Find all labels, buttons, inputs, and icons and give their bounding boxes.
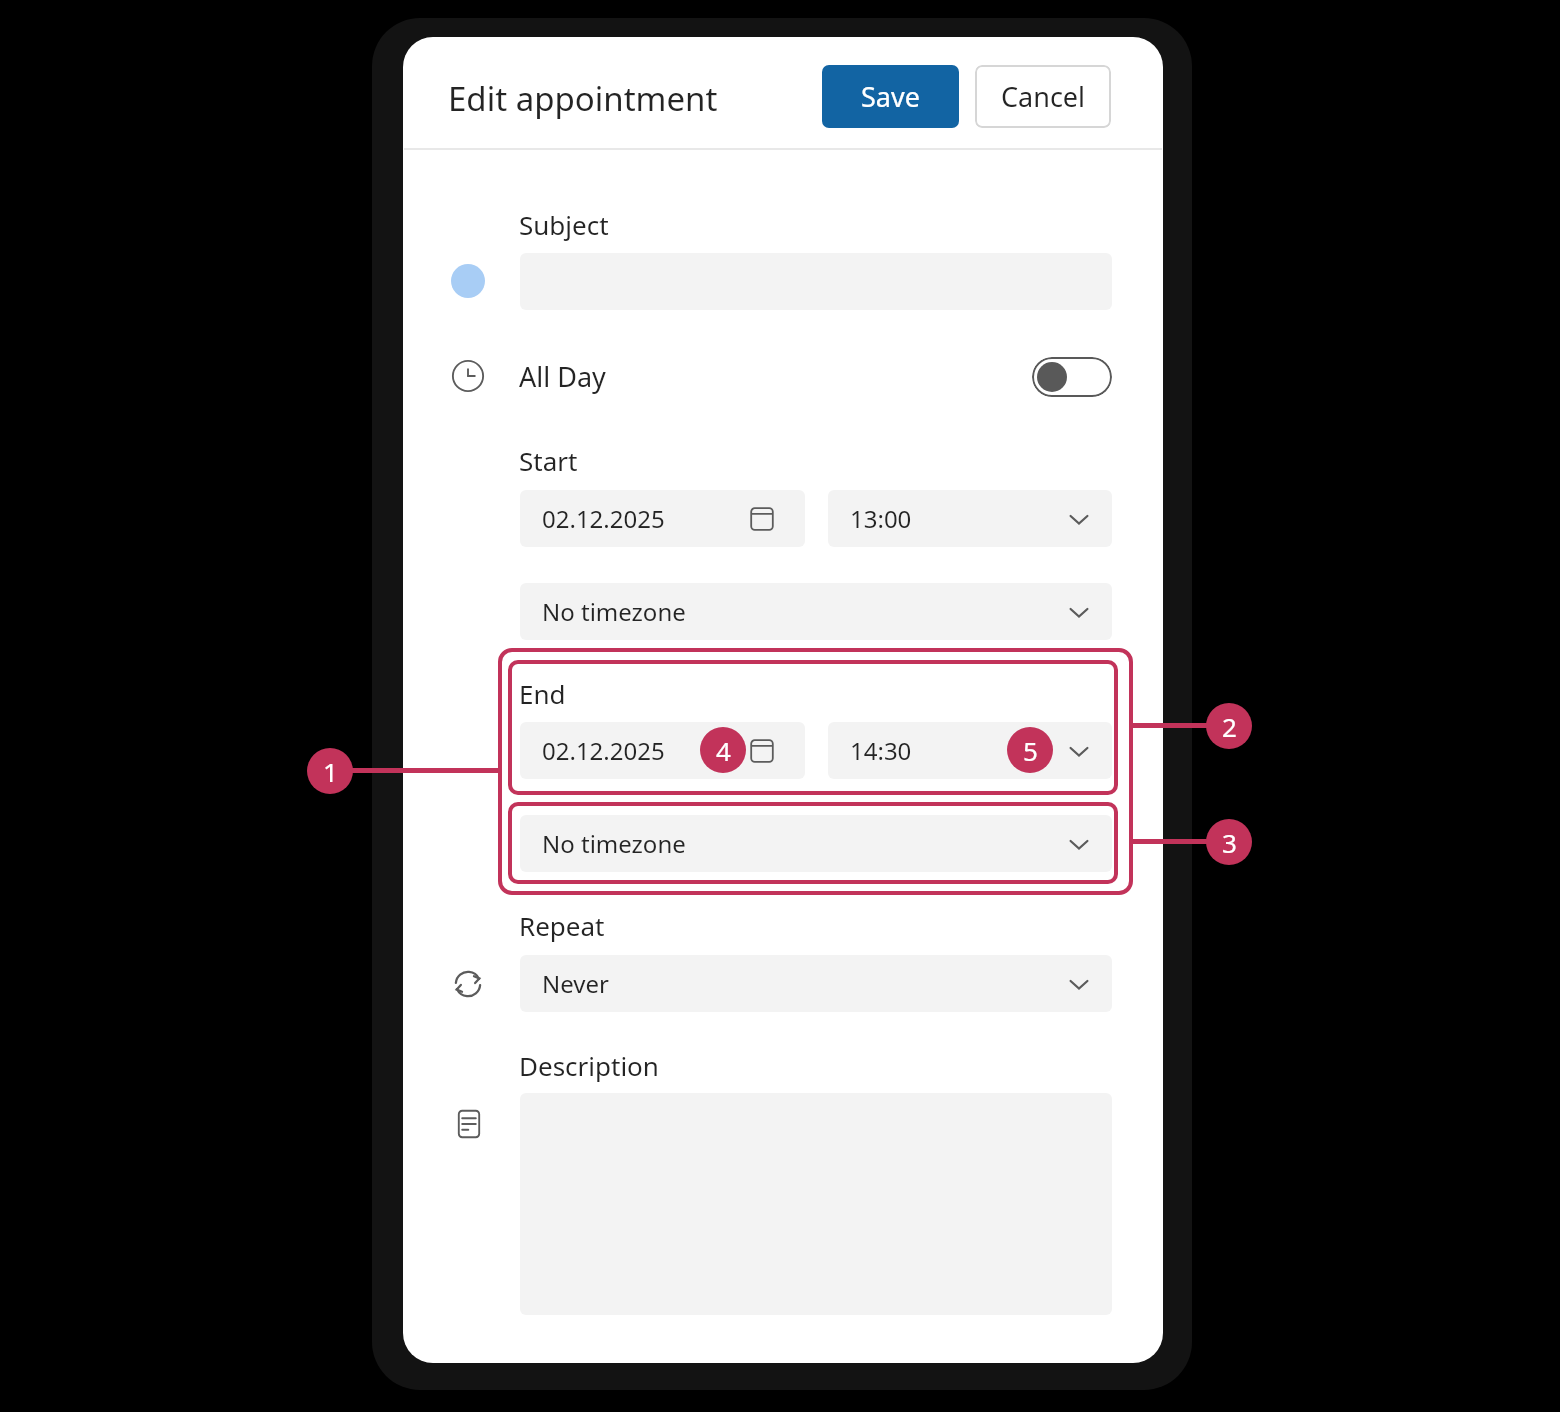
staticText: No timezone xyxy=(542,827,686,860)
staticText: Subject xyxy=(519,207,609,242)
staticText: Repeat xyxy=(519,908,605,943)
button[interactable]: Start time xyxy=(828,490,1112,547)
staticText: 2 xyxy=(1222,709,1237,744)
button[interactable]: All Day toggle, off xyxy=(1032,357,1112,397)
staticText: 1 xyxy=(323,754,338,789)
button[interactable]: End date xyxy=(520,722,805,779)
staticText: Edit appointment xyxy=(448,76,718,121)
staticText: Save xyxy=(861,78,920,115)
button[interactable]: End time xyxy=(828,722,1112,779)
staticText: No timezone xyxy=(542,595,686,628)
staticText: Description xyxy=(519,1048,659,1083)
staticText: 02.12.2025 xyxy=(542,502,665,535)
staticText: 13:00 xyxy=(850,502,912,535)
button[interactable]: Cancel xyxy=(975,65,1111,128)
staticText: End xyxy=(519,676,566,711)
button[interactable]: Save xyxy=(822,65,959,128)
staticText: 5 xyxy=(1023,733,1038,768)
button[interactable]: End timezone xyxy=(520,815,1112,872)
staticText: Start xyxy=(519,443,578,478)
button[interactable]: Repeat xyxy=(520,955,1112,1012)
staticText: Never xyxy=(542,967,609,1000)
staticText: All Day xyxy=(519,358,606,395)
button[interactable]: Start date xyxy=(520,490,805,547)
staticText: 4 xyxy=(716,733,731,768)
staticText: 02.12.2025 xyxy=(542,734,665,767)
staticText: 3 xyxy=(1222,825,1237,860)
button[interactable]: Start timezone xyxy=(520,583,1112,640)
staticText: Cancel xyxy=(1001,78,1086,115)
staticText: 14:30 xyxy=(850,734,912,767)
